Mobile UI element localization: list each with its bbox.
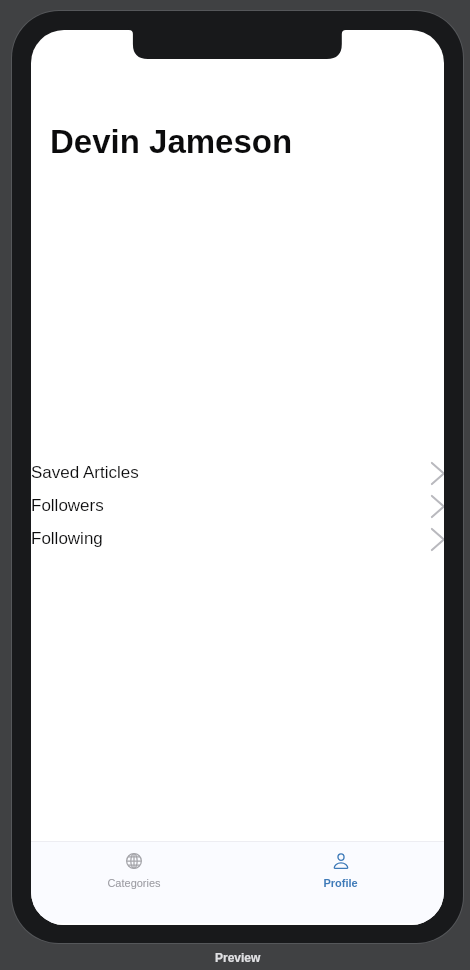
- staticText: Devin Jameson: [50, 123, 293, 160]
- staticText: Followers: [31, 496, 104, 515]
- button[interactable]: Following: [31, 522, 444, 555]
- staticText: Following: [31, 529, 103, 548]
- staticText: Profile: [323, 877, 358, 889]
- button[interactable]: Saved Articles: [31, 456, 444, 489]
- button[interactable]: Followers: [31, 489, 444, 522]
- staticText: Categories: [107, 877, 161, 889]
- staticText: Preview: [215, 951, 261, 964]
- button[interactable]: Profile: [237, 842, 444, 889]
- staticText: Saved Articles: [31, 463, 139, 482]
- button[interactable]: Categories: [31, 842, 237, 889]
